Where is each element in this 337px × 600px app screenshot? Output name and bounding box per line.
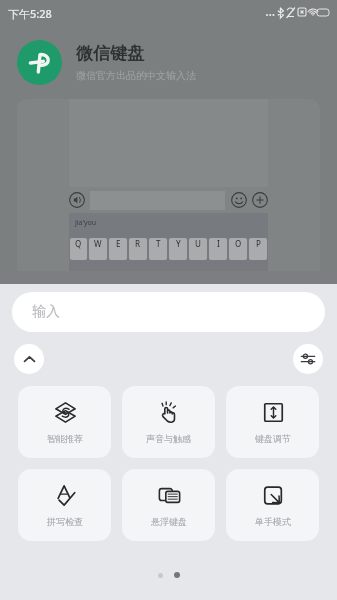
button[interactable]: 键盘调节 <box>226 386 319 458</box>
staticText: 微信键盘 <box>76 43 144 64</box>
staticText: 拼写检查 <box>47 516 83 527</box>
staticText: 声音与触感 <box>146 433 191 444</box>
button[interactable]: 声音与触感 <box>122 386 215 458</box>
staticText: 键盘调节 <box>255 433 291 444</box>
button[interactable]: 悬浮键盘 <box>122 469 215 541</box>
button[interactable]: Settings <box>293 344 323 374</box>
staticText: 下午5:28 <box>8 6 52 21</box>
staticText: 单手模式 <box>255 516 291 527</box>
staticText: R <box>135 238 141 249</box>
staticText: I <box>217 238 220 249</box>
staticText: jia'you <box>75 218 97 228</box>
button[interactable]: Collapse <box>14 344 44 374</box>
button[interactable]: 单手模式 <box>226 469 319 541</box>
staticText: P <box>256 238 261 249</box>
button[interactable]: 智能推荐 <box>18 386 111 458</box>
staticText: 输入 <box>32 303 60 321</box>
staticText: O <box>235 238 242 249</box>
staticText: E <box>116 238 121 249</box>
staticText: 微信官方出品的中文输入法 <box>76 69 196 82</box>
button[interactable]: 输入 <box>12 292 325 332</box>
button[interactable]: 拼写检查 <box>18 469 111 541</box>
staticText: 悬浮键盘 <box>151 516 187 527</box>
staticText: 智能推荐 <box>47 433 83 444</box>
staticText: U <box>195 238 201 249</box>
staticText: Y <box>176 238 181 249</box>
staticText: W <box>94 238 102 249</box>
staticText: T <box>156 238 161 249</box>
staticText: Q <box>75 238 82 249</box>
